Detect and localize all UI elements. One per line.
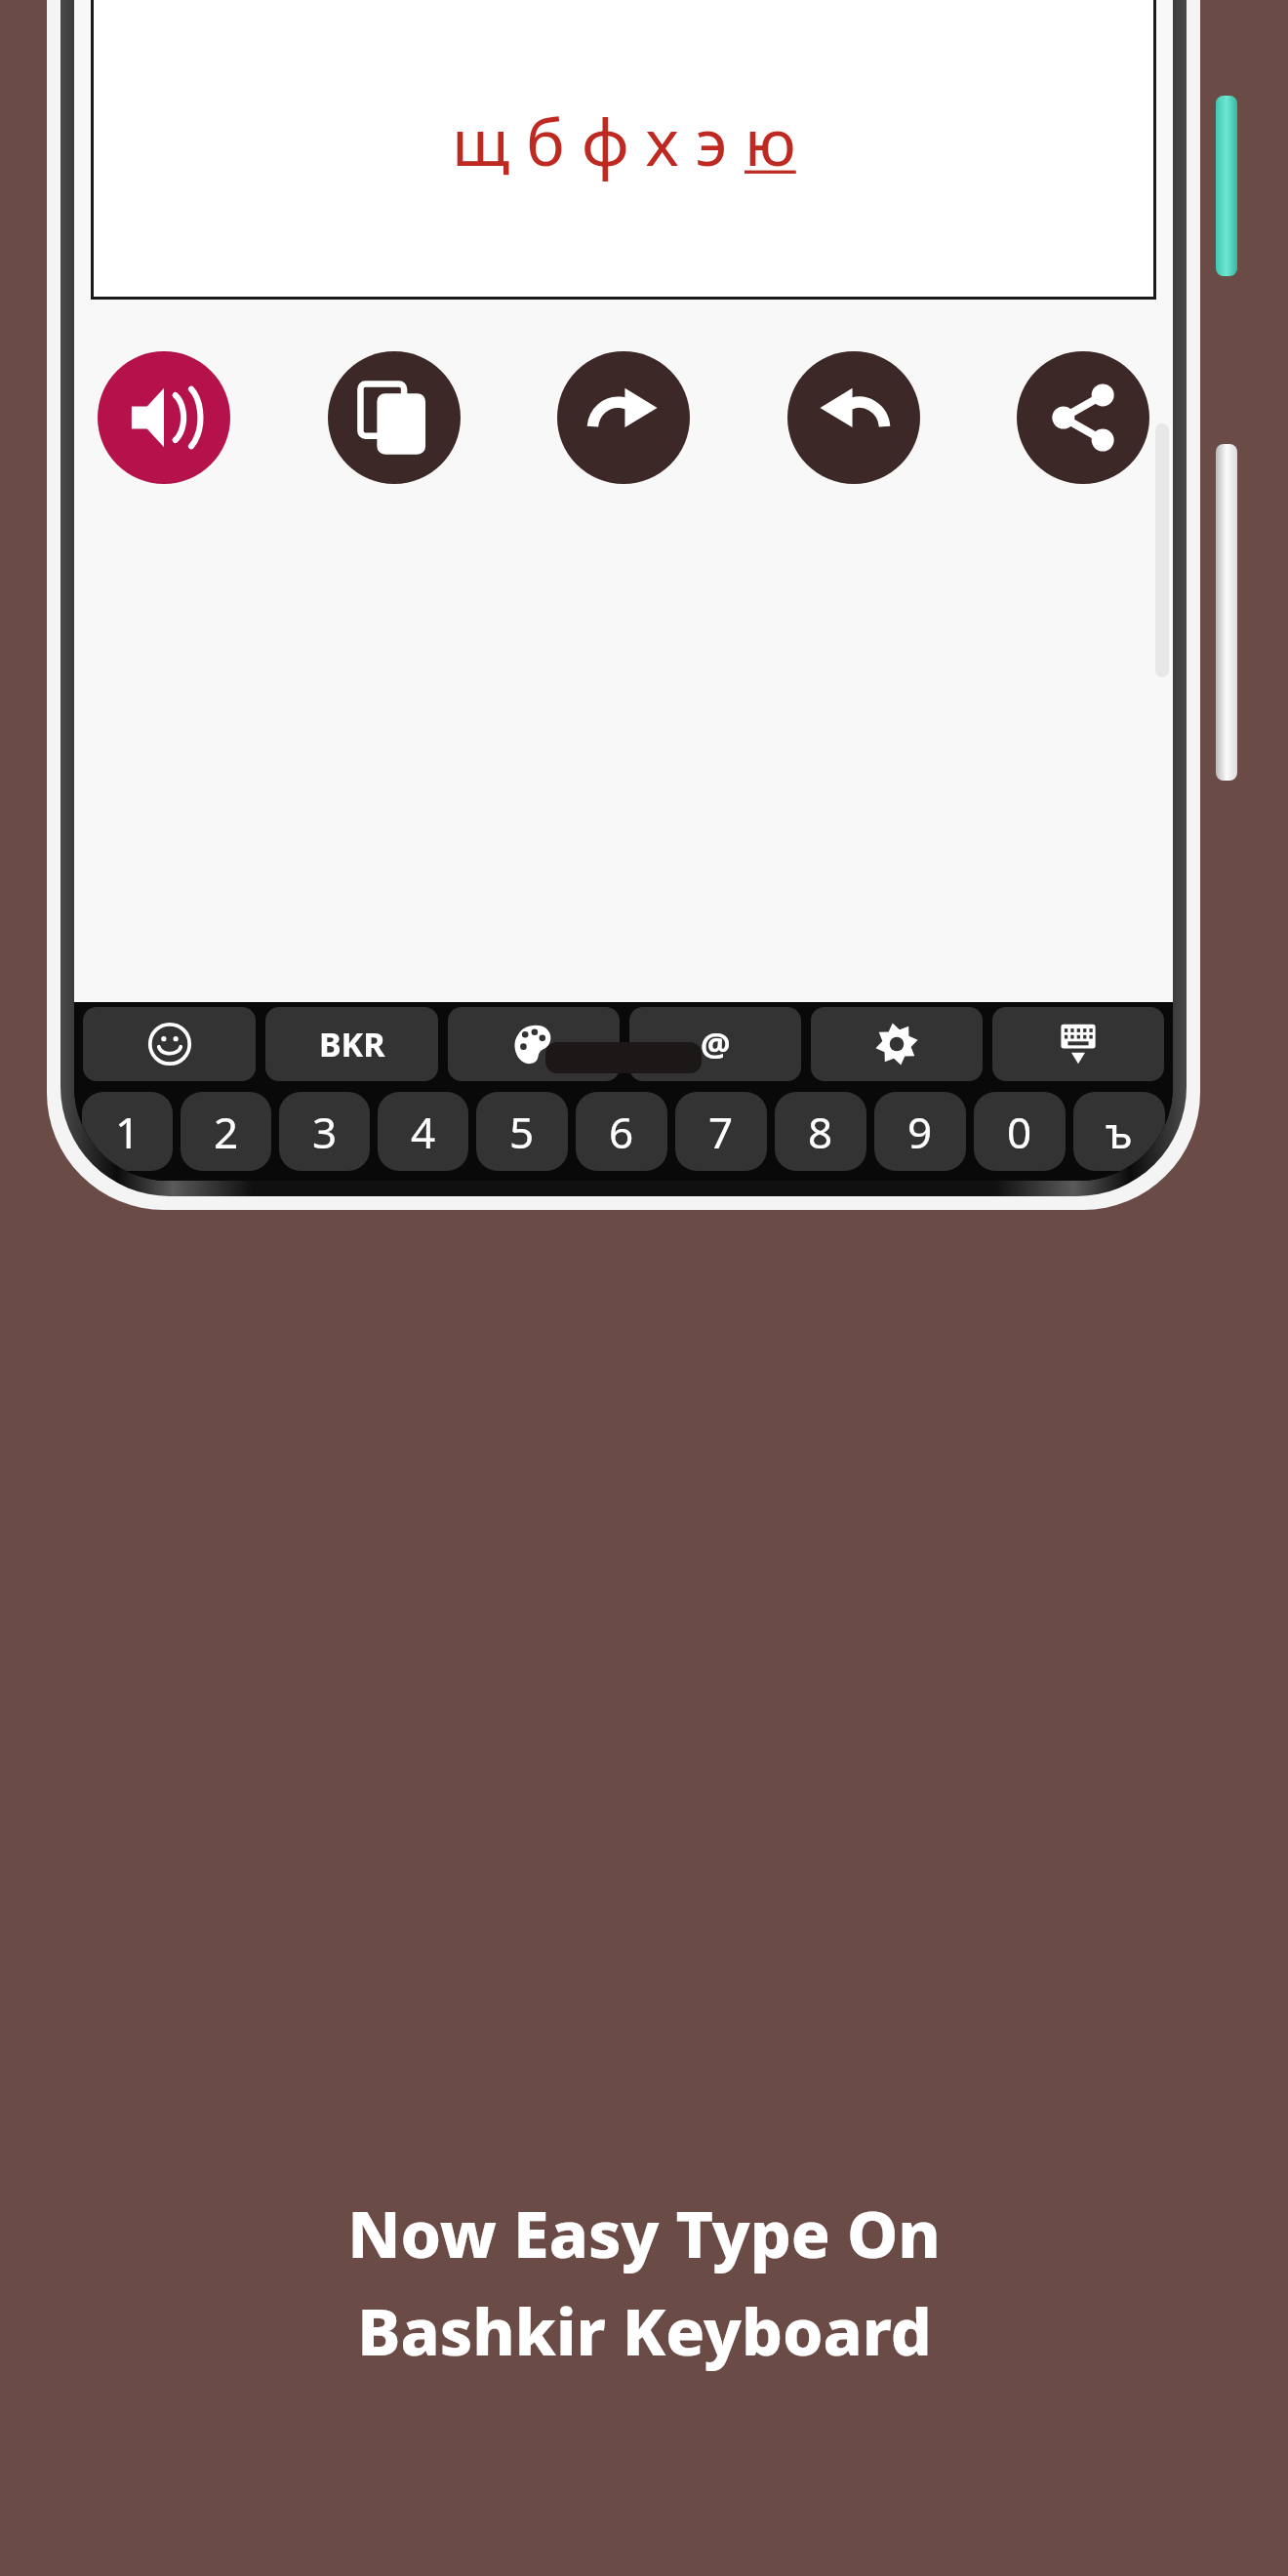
staticText: 1 bbox=[115, 1103, 141, 1161]
staticText: 5 bbox=[509, 1103, 535, 1161]
button[interactable]: 4 bbox=[378, 1092, 468, 1171]
button[interactable]: 8 bbox=[775, 1092, 866, 1171]
button[interactable]: Undo bbox=[787, 351, 920, 484]
staticText: ъ bbox=[1106, 1103, 1133, 1161]
staticText: 2 bbox=[214, 1103, 239, 1161]
staticText: 7 bbox=[708, 1103, 734, 1161]
staticText: щ б ф х э bbox=[452, 97, 745, 184]
button[interactable]: Share bbox=[1017, 351, 1149, 484]
button[interactable]: BKR bbox=[265, 1007, 438, 1081]
button[interactable]: Redo bbox=[557, 351, 690, 484]
button[interactable]: Theme bbox=[448, 1007, 620, 1081]
button[interactable]: 3 bbox=[279, 1092, 370, 1171]
button[interactable]: Hide keyboard bbox=[992, 1007, 1164, 1081]
button[interactable]: 5 bbox=[476, 1092, 568, 1171]
button[interactable]: 0 bbox=[974, 1092, 1066, 1171]
staticText: 3 bbox=[312, 1103, 338, 1161]
button[interactable]: 2 bbox=[181, 1092, 271, 1171]
staticText: ю bbox=[745, 97, 796, 184]
staticText: @ bbox=[701, 1022, 731, 1067]
button[interactable]: 6 bbox=[576, 1092, 667, 1171]
button[interactable]: ъ bbox=[1073, 1092, 1165, 1171]
button[interactable]: Settings bbox=[811, 1007, 983, 1081]
button[interactable]: 1 bbox=[82, 1092, 173, 1171]
button[interactable]: 9 bbox=[874, 1092, 966, 1171]
staticText: Bashkir Keyboard bbox=[357, 2286, 932, 2374]
button[interactable]: Emoji bbox=[83, 1007, 256, 1081]
staticText: BKR bbox=[319, 1022, 385, 1067]
staticText: 6 bbox=[609, 1103, 634, 1161]
staticText: 8 bbox=[808, 1103, 833, 1161]
staticText: 9 bbox=[907, 1103, 933, 1161]
button[interactable]: Speak bbox=[98, 351, 230, 484]
button[interactable]: @ bbox=[629, 1007, 801, 1081]
staticText: 4 bbox=[411, 1103, 436, 1161]
staticText: 0 bbox=[1007, 1103, 1032, 1161]
button[interactable]: Copy bbox=[328, 351, 461, 484]
button[interactable]: 7 bbox=[675, 1092, 767, 1171]
staticText: Now Easy Type On bbox=[347, 2189, 941, 2276]
